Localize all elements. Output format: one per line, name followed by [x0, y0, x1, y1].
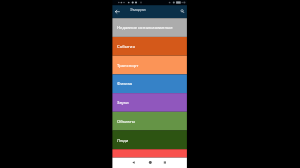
- staticText: Транспорт: [117, 63, 139, 69]
- button[interactable]: Back: [129, 158, 139, 168]
- staticText: Недавние использованные: [117, 25, 173, 31]
- button[interactable]: Recents: [161, 158, 171, 168]
- staticText: Эмодзи: [130, 7, 146, 13]
- button[interactable]: Объекты: [112, 112, 186, 131]
- button[interactable]: Home: [145, 158, 155, 168]
- button[interactable]: Транспорт: [112, 56, 186, 75]
- button[interactable]: Search: [177, 5, 186, 18]
- button[interactable]: Люди: [112, 131, 186, 150]
- button[interactable]: Звуки: [112, 93, 186, 112]
- staticText: Звуки: [117, 100, 129, 106]
- staticText: Люди: [117, 138, 129, 144]
- staticText: Объекты: [117, 119, 135, 125]
- button[interactable]: События: [112, 37, 186, 56]
- button[interactable]: Символы: [112, 149, 186, 157]
- staticText: Физика: [117, 81, 133, 87]
- button[interactable]: Back: [113, 5, 122, 18]
- button[interactable]: Недавние использованные: [112, 18, 186, 37]
- button[interactable]: Физика: [112, 74, 186, 93]
- staticText: События: [117, 44, 135, 50]
